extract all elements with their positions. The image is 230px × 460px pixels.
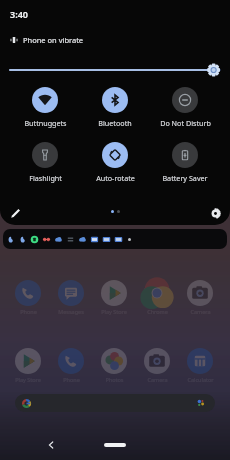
button[interactable]: Home	[104, 443, 126, 447]
staticText: Camera	[190, 308, 211, 315]
button[interactable]: Play Store	[93, 280, 135, 315]
button[interactable]: Phone	[50, 348, 92, 383]
button[interactable]: Back	[43, 437, 59, 453]
staticText: Calculator	[187, 376, 214, 383]
staticText: Play Store	[15, 376, 41, 383]
staticText: Messages	[58, 308, 84, 315]
staticText: Do Not Disturb	[160, 118, 211, 128]
button[interactable]: Camera	[179, 280, 221, 315]
button[interactable]: Notifications	[3, 229, 227, 249]
staticText: Phone	[20, 308, 37, 315]
button[interactable]: Brightness	[9, 62, 221, 78]
staticText: Chrome	[147, 308, 168, 315]
button[interactable]: Bluetooth	[80, 87, 150, 128]
staticText: Buttnuggets	[24, 118, 67, 128]
button[interactable]: Photos	[93, 348, 135, 383]
button[interactable]: Edit tiles	[7, 204, 25, 222]
staticText: Bluetooth	[98, 118, 132, 128]
staticText: Auto-rotate	[96, 173, 135, 183]
button[interactable]: Settings	[206, 204, 224, 222]
button[interactable]: Phone	[7, 280, 49, 315]
button[interactable]: Battery Saver	[150, 142, 220, 183]
button[interactable]: Buttnuggets	[10, 87, 80, 128]
staticText: 3:40	[10, 8, 28, 20]
button[interactable]: Do Not Disturb	[150, 87, 220, 128]
staticText: Battery Saver	[162, 173, 208, 183]
staticText: Photos	[105, 376, 124, 383]
staticText: Phone	[63, 376, 80, 383]
staticText: Flashlight	[29, 173, 62, 183]
button[interactable]: Flashlight	[10, 142, 80, 183]
button[interactable]: Messages	[50, 280, 92, 315]
button[interactable]: Calculator	[179, 348, 221, 383]
button[interactable]: Auto-rotate	[80, 142, 150, 183]
staticText: Camera	[147, 376, 168, 383]
staticText: Play Store	[101, 308, 127, 315]
button[interactable]: Camera	[136, 348, 178, 383]
button[interactable]: Search	[15, 394, 215, 412]
button[interactable]: Play Store	[7, 348, 49, 383]
button[interactable]: Chrome	[136, 280, 178, 315]
staticText: Phone on vibrate	[23, 35, 84, 45]
button[interactable]: Phone on vibrate	[10, 35, 84, 45]
